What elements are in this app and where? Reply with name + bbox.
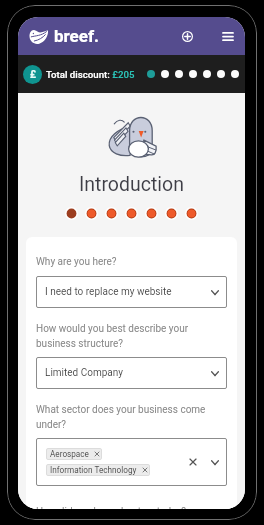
button[interactable]: Step 3 (175, 70, 183, 78)
staticText: breef. (54, 26, 100, 46)
staticText: Aerospace (50, 449, 89, 459)
button[interactable]: Section 6 (165, 207, 178, 220)
staticText: £ (30, 69, 36, 81)
staticText: Limited Company (45, 367, 124, 379)
button[interactable]: Step 6 (217, 70, 225, 78)
staticText: How would you best describe your busines… (36, 323, 189, 349)
staticText: Total discount: £205 (46, 69, 135, 80)
button[interactable]: I need to replace my website (36, 276, 227, 308)
button[interactable]: Section 7 (185, 207, 198, 220)
button[interactable]: Section 4 (125, 207, 138, 220)
button[interactable]: Menu (217, 25, 239, 47)
button[interactable]: Limited Company (36, 357, 227, 389)
button[interactable]: Step 2 (161, 70, 169, 78)
button[interactable]: Aerospace (36, 438, 227, 486)
button[interactable]: Section 2 (85, 207, 98, 220)
button[interactable]: Section 1 (65, 207, 78, 220)
button[interactable]: Step 5 (203, 70, 211, 78)
button[interactable]: Step 4 (189, 70, 197, 78)
button[interactable]: Add (176, 25, 198, 47)
staticText: How did you hear about us today? (36, 506, 187, 509)
button[interactable]: Section 3 (105, 207, 118, 220)
staticText: Information Technology (50, 465, 137, 475)
button[interactable]: Clear selection (187, 456, 199, 468)
button[interactable]: Section 5 (145, 207, 158, 220)
staticText: Introduction (79, 173, 184, 196)
button[interactable]: Step 7 (231, 70, 239, 78)
button[interactable]: Step 1 (147, 70, 155, 78)
staticText: I need to replace my website (45, 286, 172, 298)
button[interactable]: breef home (29, 26, 100, 46)
staticText: What sector does your business come unde… (36, 404, 206, 430)
staticText: Why are you here? (36, 256, 117, 268)
